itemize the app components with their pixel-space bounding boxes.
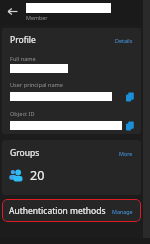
staticText: User principal name: [10, 81, 63, 89]
staticText: Full name: [10, 55, 36, 63]
staticText: Groups: [10, 147, 40, 159]
staticText: Details: [115, 37, 133, 44]
button[interactable]: Copy User principal name: [123, 90, 136, 103]
button[interactable]: Copy Object ID: [123, 119, 136, 132]
staticText: More: [119, 150, 133, 157]
button[interactable]: Manage: [112, 208, 133, 215]
staticText: Authentication methods: [9, 205, 106, 217]
staticText: Profile: [10, 34, 36, 46]
staticText: 20: [30, 167, 45, 184]
staticText: Manage: [112, 208, 133, 215]
button[interactable]: Authentication methods: [2, 199, 141, 222]
staticText: Member: [26, 14, 48, 21]
button[interactable]: Details: [115, 37, 133, 44]
button[interactable]: Back: [3, 2, 21, 20]
staticText: Object ID: [10, 110, 35, 118]
button[interactable]: More: [119, 150, 133, 157]
